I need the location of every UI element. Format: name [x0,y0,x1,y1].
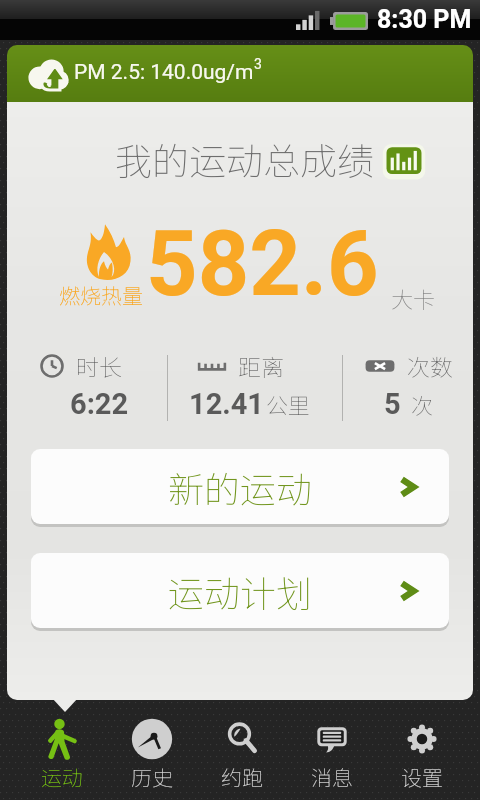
button[interactable]: History [107,700,197,800]
staticText: 消息 [311,762,353,792]
staticText: 我的运动总成绩 [115,132,374,186]
button[interactable]: Messages [287,700,377,800]
staticText: 3 [254,56,262,72]
staticText: 时长 [76,349,122,382]
staticText: 次 [411,388,434,420]
staticText: 距离 [238,349,284,382]
staticText: 8:30 PM [377,5,472,34]
staticText: 历史 [131,762,173,792]
staticText: 新的运动 [168,461,313,513]
staticText: 设置 [401,762,443,792]
button[interactable]: Find runs [197,700,287,800]
staticText: 次数 [407,349,453,382]
button[interactable]: PM 2.5: 140.0ug/m [7,45,473,102]
staticText: 运动 [41,762,83,792]
staticText: 运动计划 [168,565,313,617]
button[interactable]: 新的运动 [31,449,449,524]
button[interactable]: 运动计划 [31,553,449,628]
staticText: 燃烧热量 [59,280,143,310]
staticText: 大卡 [391,282,436,314]
staticText: 公里 [266,388,311,420]
staticText: 582.6 [146,212,379,317]
button[interactable]: Settings [377,700,467,800]
button[interactable]: Exercise [17,700,107,800]
staticText: PM 2.5: 140.0ug/m [74,60,254,85]
staticText: 12.41 [189,387,264,421]
staticText: 5 [384,387,401,421]
staticText: 6:22 [70,387,129,421]
staticText: 约跑 [221,762,263,792]
